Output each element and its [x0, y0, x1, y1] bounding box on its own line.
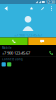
- button[interactable]: Add to favourites: [27, 4, 36, 13]
- button[interactable]: +7 900 123-45-67: [0, 50, 56, 56]
- button[interactable]: More options: [48, 4, 55, 13]
- staticText: 12:30: [46, 0, 55, 5]
- button[interactable]: Back: [1, 4, 10, 13]
- button[interactable]: Telegram: [2, 62, 6, 66]
- staticText: +7 900 123-45-67: [2, 50, 30, 56]
- button[interactable]: Edit contact: [38, 4, 47, 13]
- staticText: +7 900 123-45-67: [14, 32, 42, 38]
- button[interactable]: WhatsApp: [7, 62, 11, 66]
- button[interactable]: Send message: [28, 37, 56, 45]
- staticText: Mobile: [2, 46, 12, 50]
- staticText: Connect using: [2, 57, 23, 61]
- button[interactable]: Call: [0, 37, 28, 45]
